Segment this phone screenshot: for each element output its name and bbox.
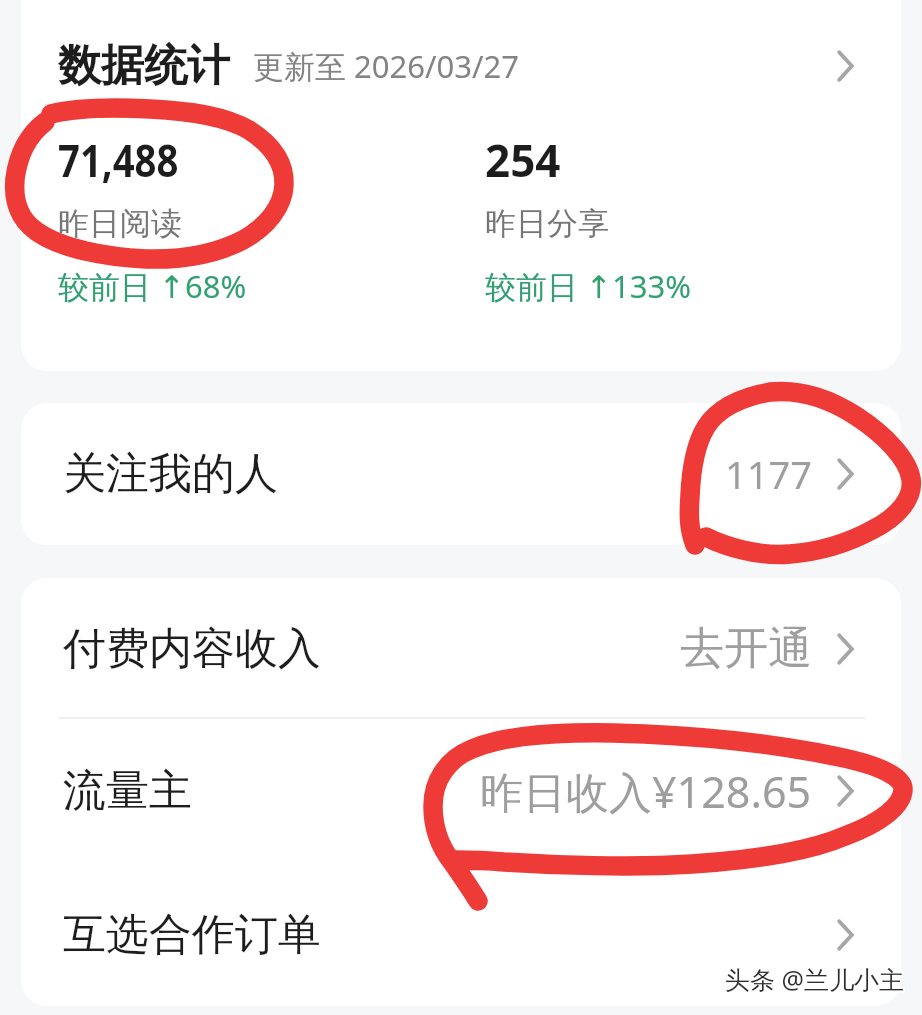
staticText: 头条 @兰儿小主	[725, 962, 904, 996]
staticText: 更新至 2026/03/27	[253, 45, 519, 87]
other: 关注我的人	[837, 458, 854, 490]
button[interactable]: 流量主	[21, 719, 901, 863]
button[interactable]: 71,488	[58, 130, 485, 307]
staticText: 较前日 ↑68%	[58, 265, 247, 307]
button[interactable]: 254	[485, 130, 691, 307]
staticText: 昨日收入¥128.65	[480, 762, 812, 821]
staticText: 头条 @兰儿小主	[725, 962, 904, 996]
button[interactable]: 数据统计	[21, 16, 901, 116]
button[interactable]: 付费内容收入	[21, 578, 901, 719]
other: 互选合作订单	[837, 919, 854, 951]
staticText: 昨日分享	[485, 204, 609, 243]
staticText: 71,488	[58, 130, 179, 190]
staticText: 昨日阅读	[58, 204, 182, 243]
staticText: 流量主	[63, 764, 192, 818]
staticText: 1177	[725, 448, 812, 500]
staticText: 关注我的人	[63, 447, 278, 501]
staticText: 互选合作订单	[63, 908, 321, 962]
staticText: 去开通	[680, 621, 812, 676]
button[interactable]: 互选合作订单	[21, 863, 901, 1006]
other: 付费内容收入	[837, 633, 854, 665]
staticText: 较前日 ↑133%	[485, 265, 691, 307]
staticText: 数据统计	[58, 39, 230, 93]
other: 数据统计详情	[837, 50, 854, 82]
staticText: 254	[485, 130, 561, 190]
other: 流量主	[837, 775, 854, 807]
button[interactable]: 关注我的人	[21, 403, 901, 545]
staticText: 付费内容收入	[63, 622, 321, 676]
